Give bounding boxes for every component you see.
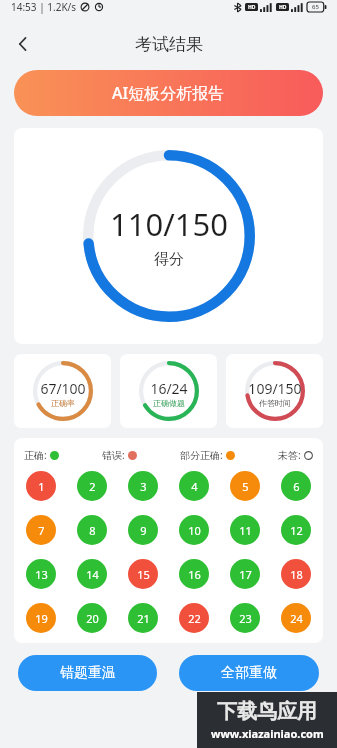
staticText: 3 [140,479,147,494]
button[interactable]: 8 [77,515,107,545]
button[interactable]: 20 [77,603,107,633]
staticText: 17 [239,567,252,582]
staticText: 部分正确: [180,448,223,462]
staticText: 正确率 [51,398,75,408]
button[interactable]: 5 [230,471,260,501]
staticText: HD [248,4,256,11]
staticText: 110/150 [110,203,228,245]
staticText: 65 [312,3,319,11]
button[interactable]: 16 [179,559,209,589]
button[interactable]: 全部重做 [179,655,319,691]
staticText: www.xiazainiao.com [211,726,324,741]
button[interactable]: 6 [281,471,311,501]
staticText: 全部重做 [221,664,277,682]
button[interactable]: 23 [230,603,260,633]
button[interactable]: 14 [77,559,107,589]
staticText: 得分 [154,250,184,269]
staticText: 错题重温 [60,664,116,682]
staticText: 作答时间 [259,398,291,408]
staticText: 4 [191,479,198,494]
staticText: 11 [239,523,252,538]
button[interactable]: 19 [26,603,56,633]
button[interactable]: 2 [77,471,107,501]
staticText: 15 [137,567,150,582]
staticText: 22 [188,611,201,626]
staticText: 下载鸟应用 [217,699,317,724]
button[interactable]: 1 [26,471,56,501]
staticText: 14 [86,567,99,582]
button[interactable]: 24 [281,603,311,633]
button[interactable]: 109/150 [226,354,323,428]
button[interactable]: 22 [179,603,209,633]
staticText: 2 [89,479,96,494]
staticText: 12 [290,523,303,538]
staticText: 16 [188,567,201,582]
staticText: 5 [242,479,249,494]
staticText: 正确: [24,448,47,462]
button[interactable]: 9 [128,515,158,545]
staticText: 8 [89,523,96,538]
button[interactable]: 17 [230,559,260,589]
button[interactable]: AI短板分析报告 [14,70,323,116]
staticText: 20 [86,611,99,626]
staticText: AI短板分析报告 [112,82,225,104]
button[interactable]: 11 [230,515,260,545]
button[interactable]: 16/24 [120,354,217,428]
button[interactable]: 错题重温 [18,655,157,691]
button[interactable]: 4 [179,471,209,501]
button[interactable]: Back [6,27,40,61]
button[interactable]: 21 [128,603,158,633]
button[interactable]: 15 [128,559,158,589]
staticText: 考试结果 [135,34,203,55]
button[interactable]: 10 [179,515,209,545]
staticText: 16/24 [150,379,188,398]
staticText: 24 [290,611,303,626]
staticText: 9 [140,523,147,538]
staticText: 14:53 | 1.2K/s [11,0,77,14]
staticText: 1 [38,479,45,494]
staticText: 19 [35,611,48,626]
staticText: HD [279,4,287,11]
staticText: 正确做题 [153,398,185,408]
button[interactable]: 7 [26,515,56,545]
button[interactable]: 13 [26,559,56,589]
button[interactable]: 12 [281,515,311,545]
staticText: 错误: [102,448,125,462]
button[interactable]: 18 [281,559,311,589]
staticText: 未答: [278,448,301,462]
staticText: 18 [290,567,303,582]
staticText: 109/150 [248,379,302,398]
button[interactable]: 67/100 [14,354,111,428]
button[interactable]: 3 [128,471,158,501]
staticText: 6 [293,479,300,494]
staticText: 23 [239,611,252,626]
staticText: 7 [38,523,45,538]
staticText: 67/100 [40,379,86,398]
staticText: 21 [137,611,150,626]
staticText: 13 [35,567,48,582]
staticText: 10 [188,523,201,538]
